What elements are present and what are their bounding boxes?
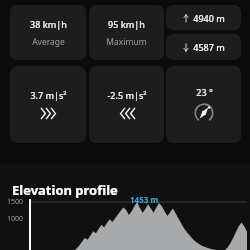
staticText: 23 ° xyxy=(196,86,213,98)
staticText: 4940 m xyxy=(193,12,225,24)
button[interactable]: Max acceleration xyxy=(10,66,86,143)
staticText: 4587 m xyxy=(193,41,225,53)
staticText: 1500 xyxy=(7,197,24,207)
button[interactable]: Total descent xyxy=(166,34,241,60)
staticText: Elevation profile xyxy=(12,181,118,199)
staticText: 3.7 m|s² xyxy=(30,89,67,101)
button[interactable]: Total ascent xyxy=(166,5,241,30)
button[interactable]: Heading xyxy=(166,66,241,143)
staticText: 95 km|h xyxy=(108,18,145,30)
staticText: 38 km|h xyxy=(30,18,67,30)
button[interactable]: 38 km|h xyxy=(10,5,86,60)
staticText: Average xyxy=(32,36,65,48)
staticText: 1000 xyxy=(7,214,24,224)
staticText: 1453 m xyxy=(130,194,159,205)
button[interactable]: 95 km|h xyxy=(89,5,164,60)
staticText: Maximum xyxy=(106,36,147,48)
button[interactable]: Max deceleration xyxy=(89,66,164,143)
staticText: -2.5 m|s² xyxy=(107,89,147,101)
